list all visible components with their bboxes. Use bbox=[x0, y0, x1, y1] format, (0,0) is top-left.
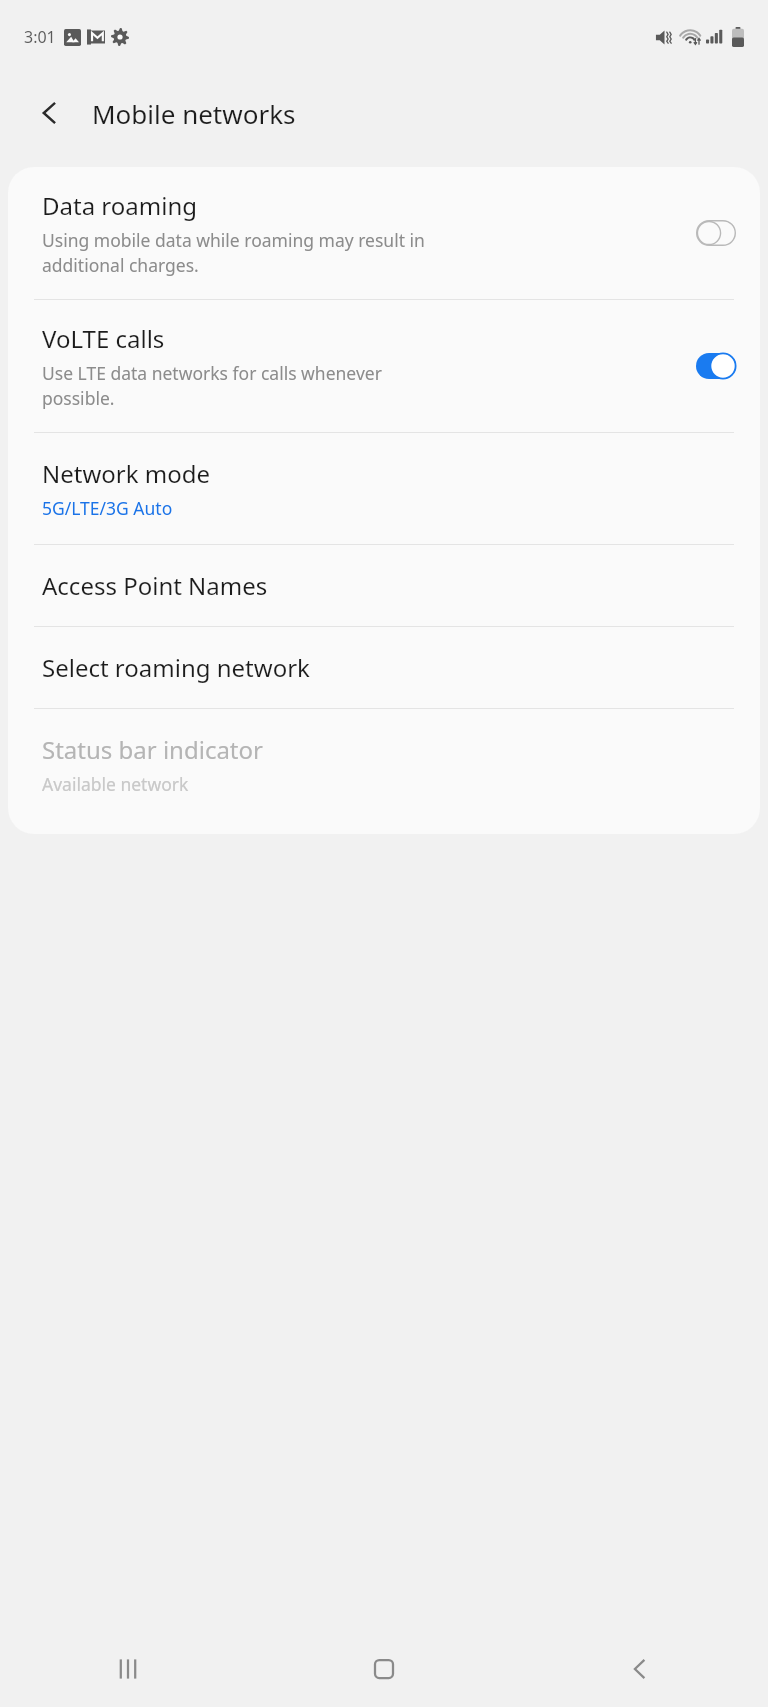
staticText: 5G/LTE/3G Auto bbox=[42, 496, 173, 520]
staticText: VoLTE calls bbox=[42, 322, 165, 355]
staticText: Mobile networks bbox=[92, 96, 296, 131]
button[interactable]: Back bbox=[512, 1630, 768, 1707]
button[interactable]: VoLTE calls bbox=[8, 300, 760, 432]
button[interactable]: Access Point Names bbox=[8, 545, 760, 626]
button[interactable]: Network mode bbox=[8, 433, 760, 544]
staticText: Use LTE data networks for calls whenever… bbox=[42, 361, 382, 410]
staticText: Available network bbox=[42, 772, 189, 796]
staticText: Data roaming bbox=[42, 189, 197, 222]
button[interactable]: Navigate up bbox=[24, 87, 76, 139]
button[interactable]: Select roaming network bbox=[8, 627, 760, 708]
button[interactable]: Status bar indicator bbox=[8, 709, 760, 820]
button[interactable]: Off bbox=[696, 220, 736, 246]
button[interactable]: Recent apps bbox=[0, 1630, 256, 1707]
staticText: Network mode bbox=[42, 457, 211, 490]
staticText: Select roaming network bbox=[42, 651, 310, 684]
button[interactable]: Data roaming bbox=[8, 167, 760, 299]
staticText: Using mobile data while roaming may resu… bbox=[42, 228, 425, 277]
button[interactable]: Home bbox=[256, 1630, 512, 1707]
button[interactable]: On bbox=[696, 353, 736, 379]
staticText: 3:01 bbox=[24, 26, 56, 48]
staticText: Access Point Names bbox=[42, 569, 268, 602]
staticText: Status bar indicator bbox=[42, 733, 263, 766]
